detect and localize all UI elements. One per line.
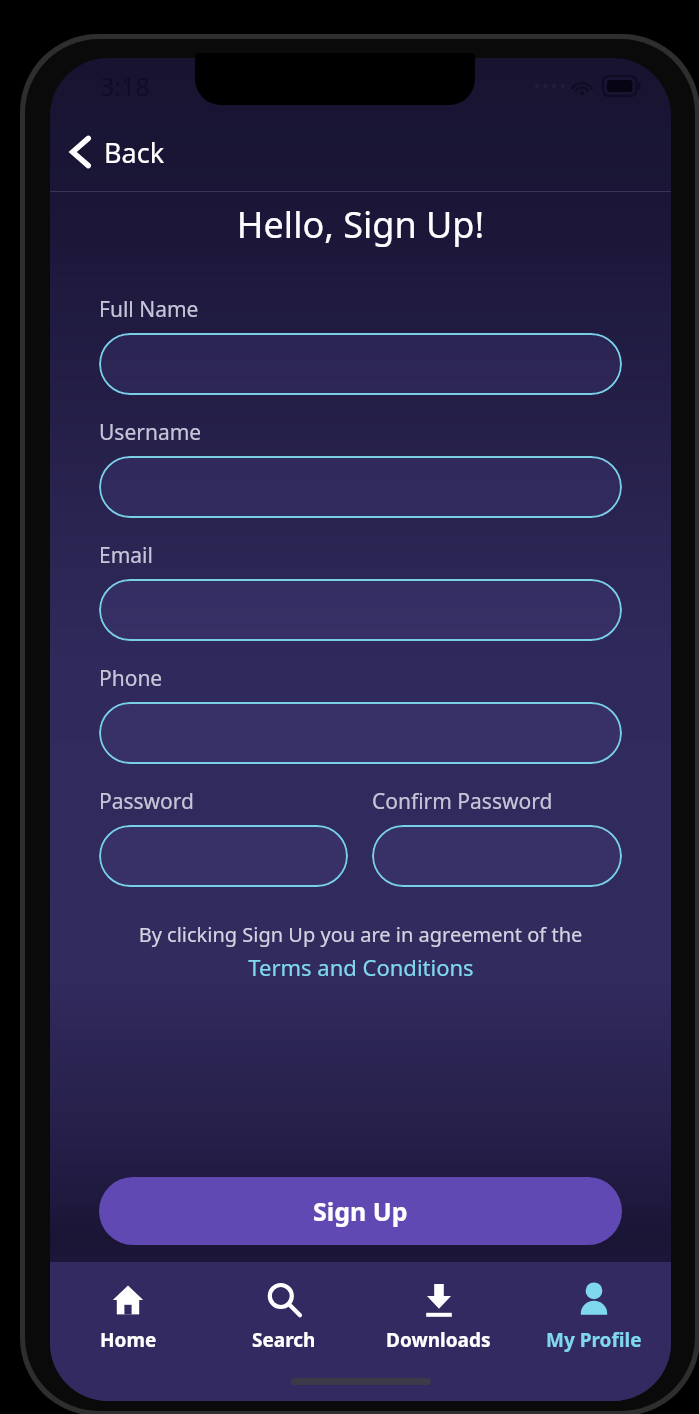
other: Search	[264, 1280, 304, 1320]
button[interactable]: Search	[206, 1262, 361, 1370]
button[interactable]: Sign Up	[99, 1177, 622, 1245]
button[interactable]	[372, 825, 622, 887]
staticText: Terms and Conditions	[248, 952, 474, 982]
staticText: Full Name	[99, 295, 199, 324]
staticText: Hello, Sign Up!	[50, 200, 671, 249]
staticText: Confirm Password	[372, 787, 553, 816]
staticText: Sign Up	[313, 1194, 408, 1228]
staticText: Username	[99, 418, 202, 447]
staticText: My Profile	[546, 1327, 642, 1353]
staticText: Downloads	[386, 1327, 491, 1353]
button[interactable]	[99, 456, 622, 518]
button[interactable]: Home	[50, 1262, 206, 1370]
staticText: Password	[99, 787, 194, 816]
staticText: By clicking Sign Up you are in agreement…	[76, 921, 645, 948]
button[interactable]	[99, 333, 622, 395]
staticText: 3:18	[100, 69, 150, 103]
staticText: Back	[104, 134, 165, 171]
button[interactable]	[99, 702, 622, 764]
button[interactable]	[99, 579, 622, 641]
staticText: Phone	[99, 664, 163, 693]
button[interactable]	[99, 825, 348, 887]
other: Downloads	[419, 1280, 459, 1320]
button[interactable]: Downloads	[361, 1262, 516, 1370]
button[interactable]: My Profile	[516, 1262, 671, 1370]
staticText: Email	[99, 541, 153, 570]
other: My Profile	[574, 1280, 614, 1320]
button[interactable]: Terms and Conditions	[248, 952, 474, 982]
button[interactable]: Back	[60, 113, 183, 191]
staticText: Home	[100, 1327, 157, 1353]
staticText: Search	[252, 1327, 316, 1353]
other: Home	[108, 1280, 148, 1320]
